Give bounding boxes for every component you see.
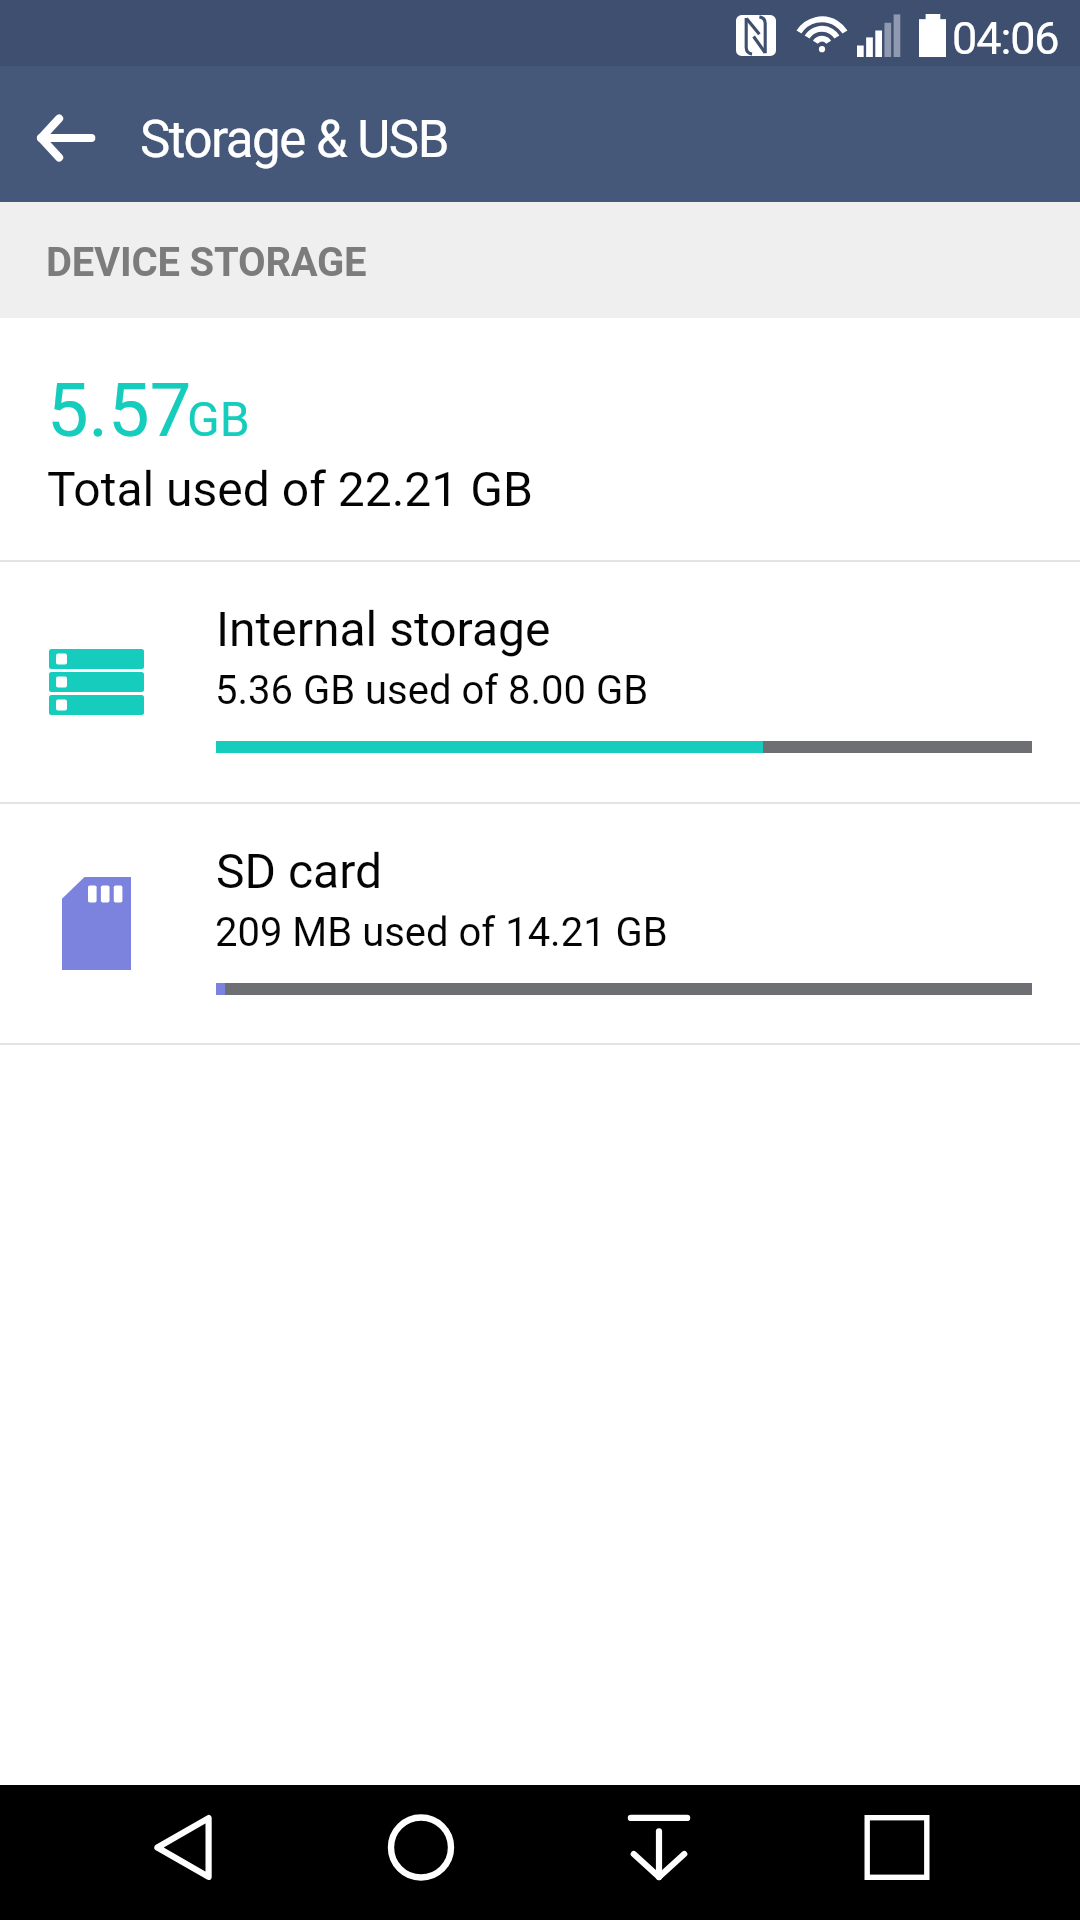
staticText: GB xyxy=(187,391,250,447)
staticText: 04:06 xyxy=(952,12,1059,65)
staticText: 5.57 xyxy=(47,367,192,454)
button[interactable]: Back xyxy=(64,1785,302,1915)
staticText: 209 MB used of 14.21 GB xyxy=(215,909,668,956)
staticText: DEVICE STORAGE xyxy=(46,239,367,286)
staticText: 5.36 GB used of 8.00 GB xyxy=(215,667,649,714)
button[interactable]: Recents xyxy=(778,1785,1016,1915)
staticText: SD card xyxy=(216,843,383,899)
staticText: Storage & USB xyxy=(140,110,448,170)
staticText: Total used of 22.21 GB xyxy=(47,461,533,517)
button[interactable]: 5.57 xyxy=(0,318,1080,560)
staticText: Internal storage xyxy=(216,601,551,657)
button[interactable]: Downloads xyxy=(540,1785,778,1915)
button[interactable]: Home xyxy=(302,1785,540,1915)
button[interactable]: Navigate up xyxy=(0,66,132,202)
button[interactable]: Internal storage xyxy=(0,562,1080,802)
button[interactable]: SD card xyxy=(0,804,1080,1043)
